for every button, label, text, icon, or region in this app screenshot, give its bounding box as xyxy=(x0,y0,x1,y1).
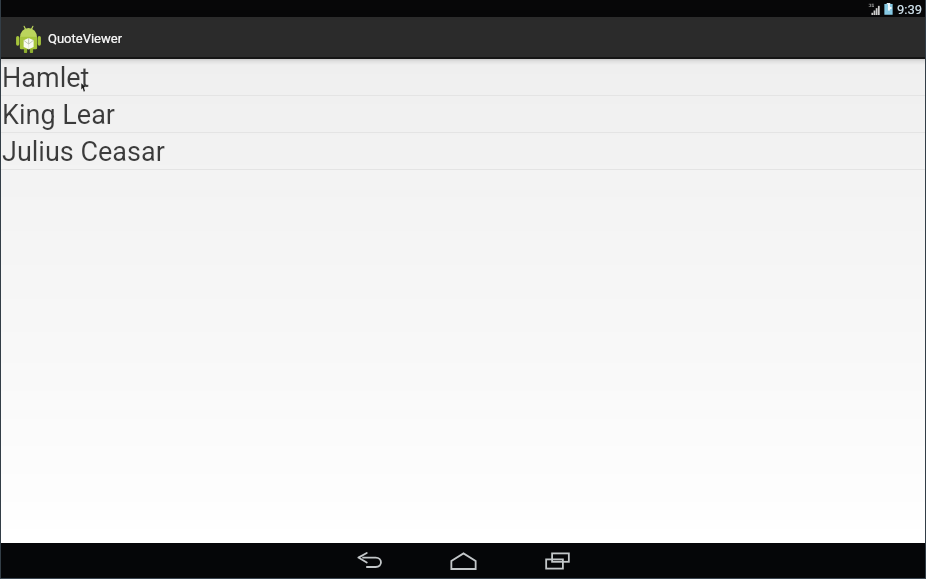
staticText: Hamlet xyxy=(2,62,90,94)
staticText: Julius Ceasar xyxy=(2,136,165,168)
button[interactable]: Recent apps xyxy=(510,543,604,579)
button[interactable]: Home xyxy=(416,543,510,579)
button[interactable]: King Lear xyxy=(0,96,926,133)
staticText: King Lear xyxy=(2,99,115,131)
staticText: QuoteViewer xyxy=(48,31,123,46)
button[interactable]: Julius Ceasar xyxy=(0,133,926,170)
button[interactable]: Hamlet xyxy=(0,59,926,96)
staticText: 9:39 xyxy=(897,2,923,17)
button[interactable]: QuoteViewer xyxy=(0,17,145,59)
button[interactable]: Back xyxy=(322,543,416,579)
